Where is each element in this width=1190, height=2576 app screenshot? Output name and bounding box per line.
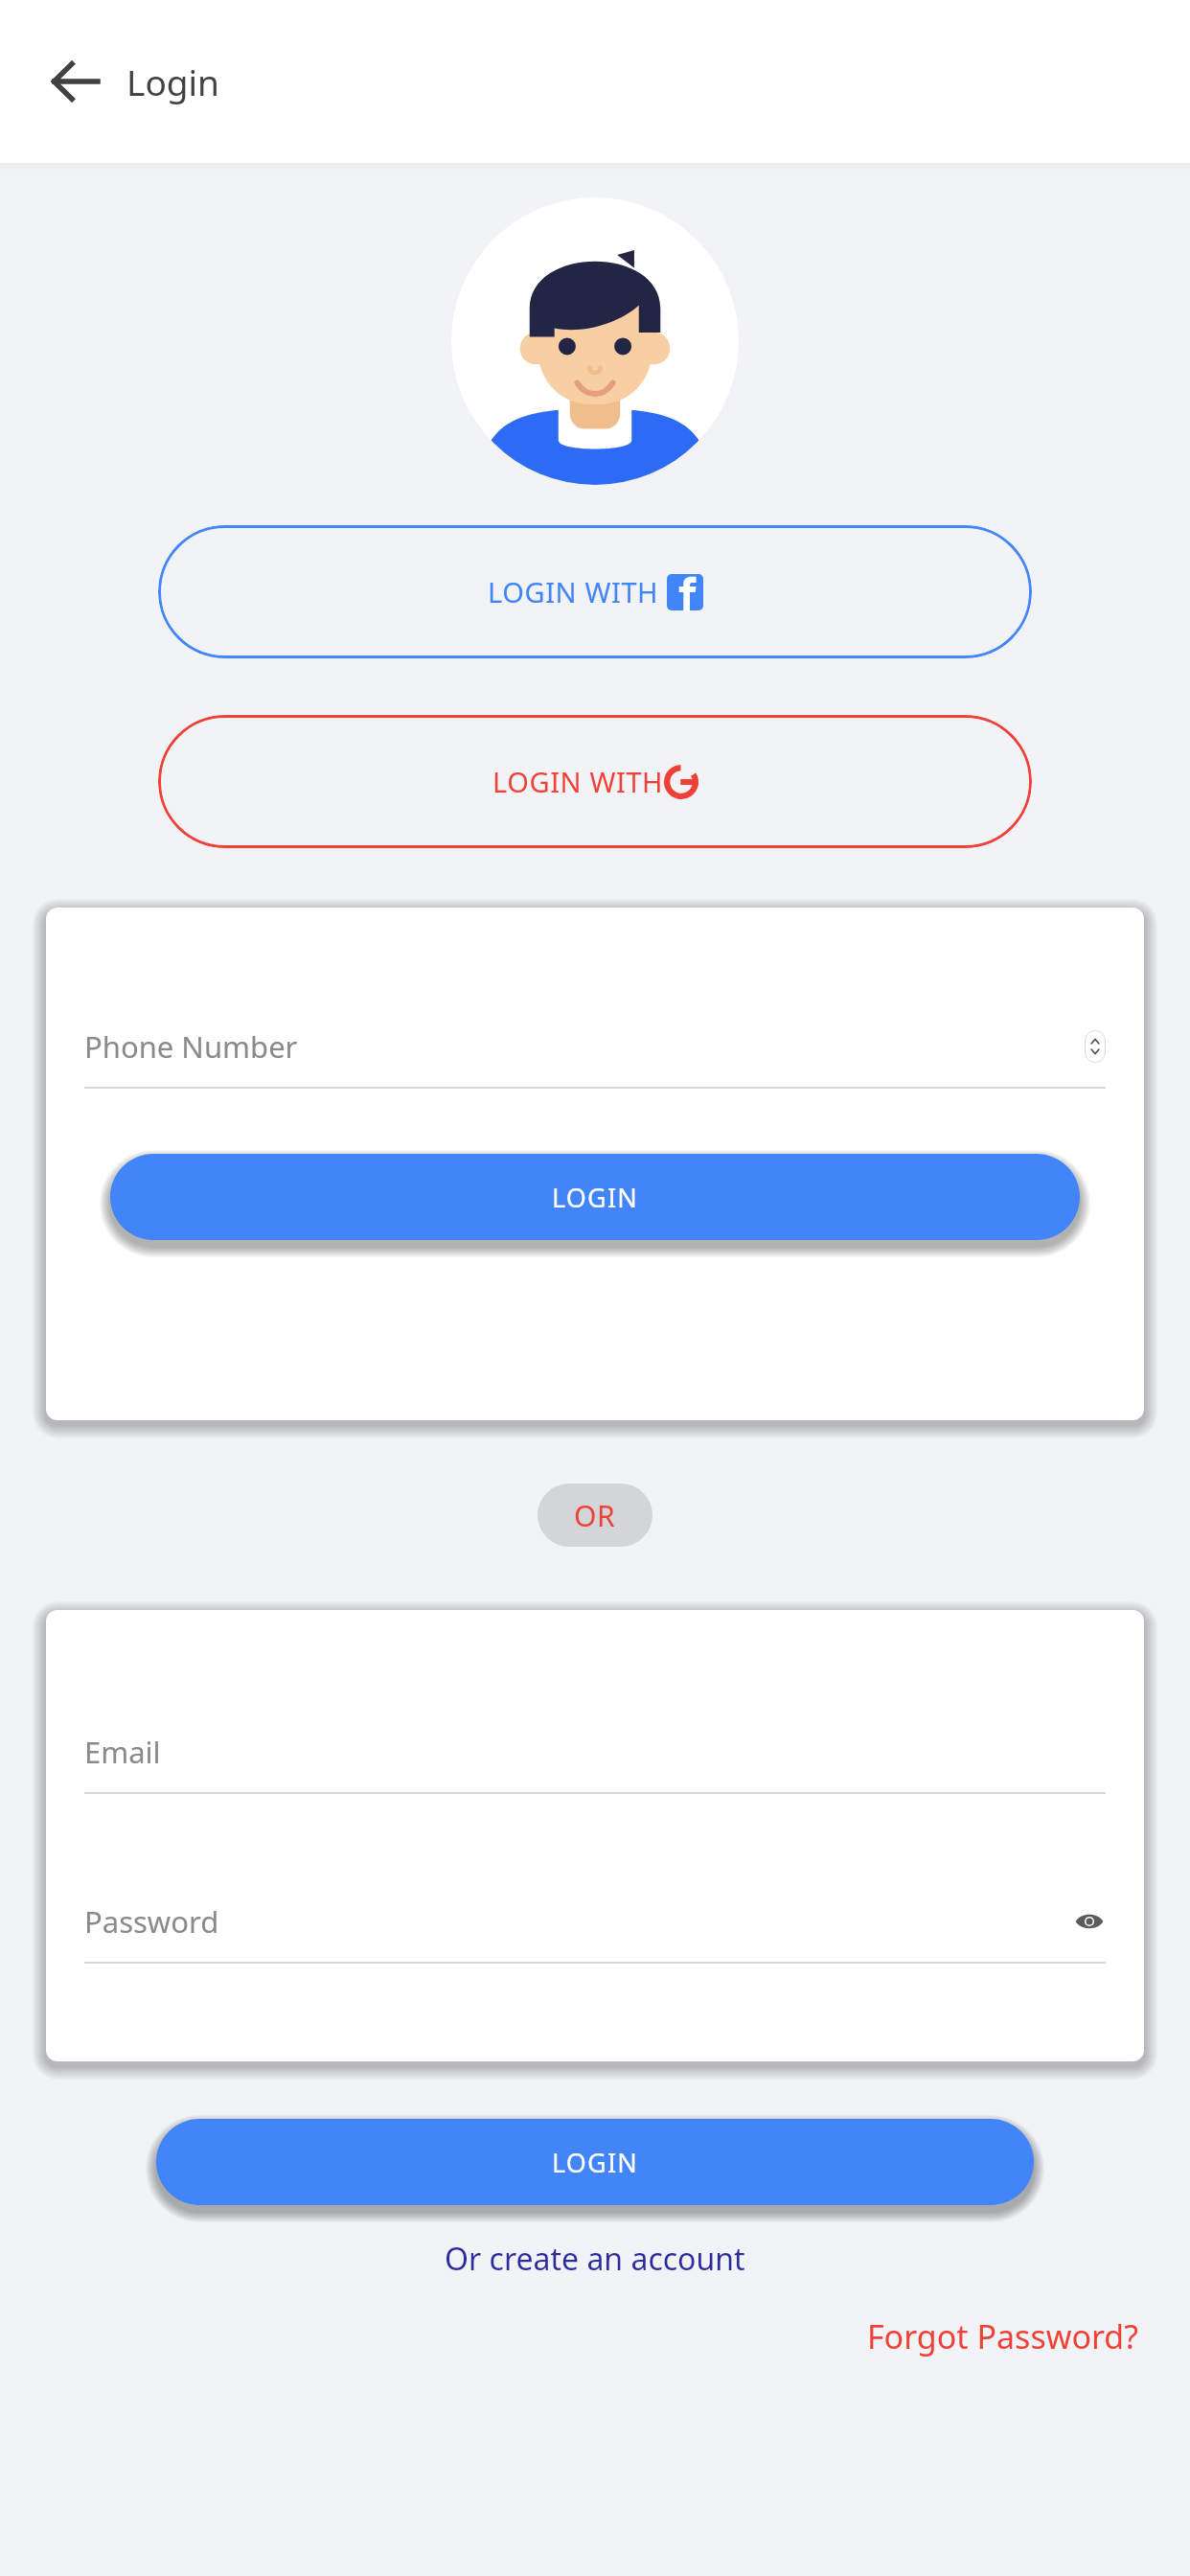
staticText: LOGIN	[552, 2145, 639, 2180]
button[interactable]: LOGIN	[156, 2119, 1034, 2205]
staticText: Forgot Password?	[866, 2314, 1138, 2358]
button[interactable]: LOGIN	[110, 1154, 1080, 1240]
button[interactable]: Back	[29, 35, 121, 127]
staticText: Password	[84, 1901, 1073, 1942]
button[interactable]: Or create an account	[433, 2230, 757, 2288]
staticText: Login	[126, 57, 219, 105]
other: Select country code	[1085, 1030, 1106, 1063]
staticText: LOGIN WITH	[488, 573, 667, 610]
button[interactable]: LOGIN WITH	[158, 715, 1032, 848]
button[interactable]: LOGIN WITH	[158, 525, 1032, 658]
staticText: Email	[84, 1732, 161, 1772]
button[interactable]: Show password	[1073, 1905, 1106, 1938]
staticText: Phone Number	[84, 1026, 1085, 1067]
staticText: LOGIN	[552, 1180, 639, 1215]
staticText: Or create an account	[445, 2238, 745, 2280]
button[interactable]: Forgot Password?	[860, 2309, 1144, 2364]
staticText: LOGIN WITH	[492, 763, 664, 800]
staticText: OR	[574, 1496, 616, 1535]
